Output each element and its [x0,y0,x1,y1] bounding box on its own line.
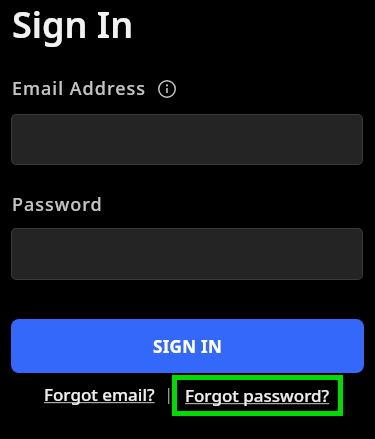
button[interactable]: Forgot email? [44,383,155,406]
staticText: Password [12,192,103,217]
button[interactable]: SIGN IN [11,319,364,373]
staticText: Email Address [12,76,146,101]
staticText: Sign In [12,0,134,49]
button[interactable] [11,228,363,280]
button[interactable]: Forgot password? [172,375,343,416]
staticText: SIGN IN [153,335,223,358]
button[interactable] [11,114,363,165]
staticText: | [164,382,174,405]
staticText: Forgot password? [185,384,330,407]
